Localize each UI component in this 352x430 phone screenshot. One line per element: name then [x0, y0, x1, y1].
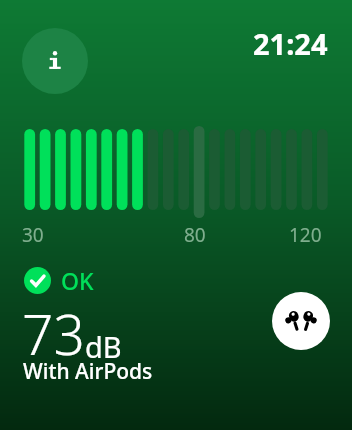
staticText: 120 [289, 222, 322, 248]
button[interactable]: Information [22, 28, 88, 94]
staticText: 80 [184, 222, 206, 248]
button[interactable]: OK [24, 264, 94, 296]
staticText: 21:24 [253, 24, 328, 60]
staticText: 30 [22, 222, 44, 248]
staticText: With AirPods [23, 357, 153, 386]
staticText: 73 [22, 296, 85, 371]
staticText: dB [85, 327, 122, 366]
staticText: OK [61, 265, 94, 296]
button[interactable]: AirPods source [272, 292, 330, 350]
